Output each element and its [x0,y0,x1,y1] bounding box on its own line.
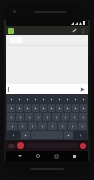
button[interactable] [78,122,87,130]
button[interactable] [80,104,87,112]
button[interactable] [61,113,69,121]
button[interactable]: Send voice [80,143,86,149]
button[interactable] [64,131,73,139]
button[interactable] [58,122,67,130]
button[interactable] [56,104,63,112]
button[interactable]: Record [17,142,24,149]
button[interactable] [80,95,87,103]
button[interactable] [72,104,79,112]
button[interactable] [32,95,39,103]
button[interactable] [24,104,31,112]
button[interactable] [8,144,15,148]
button[interactable] [74,131,87,139]
button[interactable] [21,131,30,139]
button[interactable] [7,104,15,112]
button[interactable] [7,95,15,103]
button[interactable]: Back [16,152,24,160]
button[interactable] [52,113,60,121]
button[interactable] [48,104,55,112]
button[interactable] [64,104,71,112]
button[interactable] [25,113,33,121]
button[interactable] [48,95,55,103]
button[interactable]: Send [78,85,86,93]
button[interactable] [34,113,42,121]
button[interactable]: Switch keyboard [70,152,78,160]
button[interactable] [40,95,47,103]
button[interactable] [43,113,51,121]
button[interactable]: Recent apps [52,152,60,160]
button[interactable]: More options [79,27,86,34]
button[interactable] [28,122,37,130]
button[interactable] [24,95,31,103]
button[interactable] [68,122,77,130]
button[interactable] [16,95,23,103]
button[interactable] [7,131,20,139]
button[interactable] [56,95,63,103]
button[interactable] [16,113,24,121]
button[interactable] [7,113,15,121]
button[interactable] [70,113,78,121]
button[interactable] [48,122,57,130]
button[interactable] [72,95,79,103]
button[interactable] [38,122,47,130]
button[interactable]: Home [34,152,42,160]
button[interactable] [40,104,47,112]
button[interactable] [79,113,87,121]
button[interactable] [64,95,71,103]
button[interactable]: Contact [8,28,14,34]
button[interactable] [32,104,39,112]
button[interactable] [18,122,27,130]
button[interactable]: Attach [71,27,78,34]
button[interactable] [16,104,23,112]
button[interactable] [7,122,17,130]
